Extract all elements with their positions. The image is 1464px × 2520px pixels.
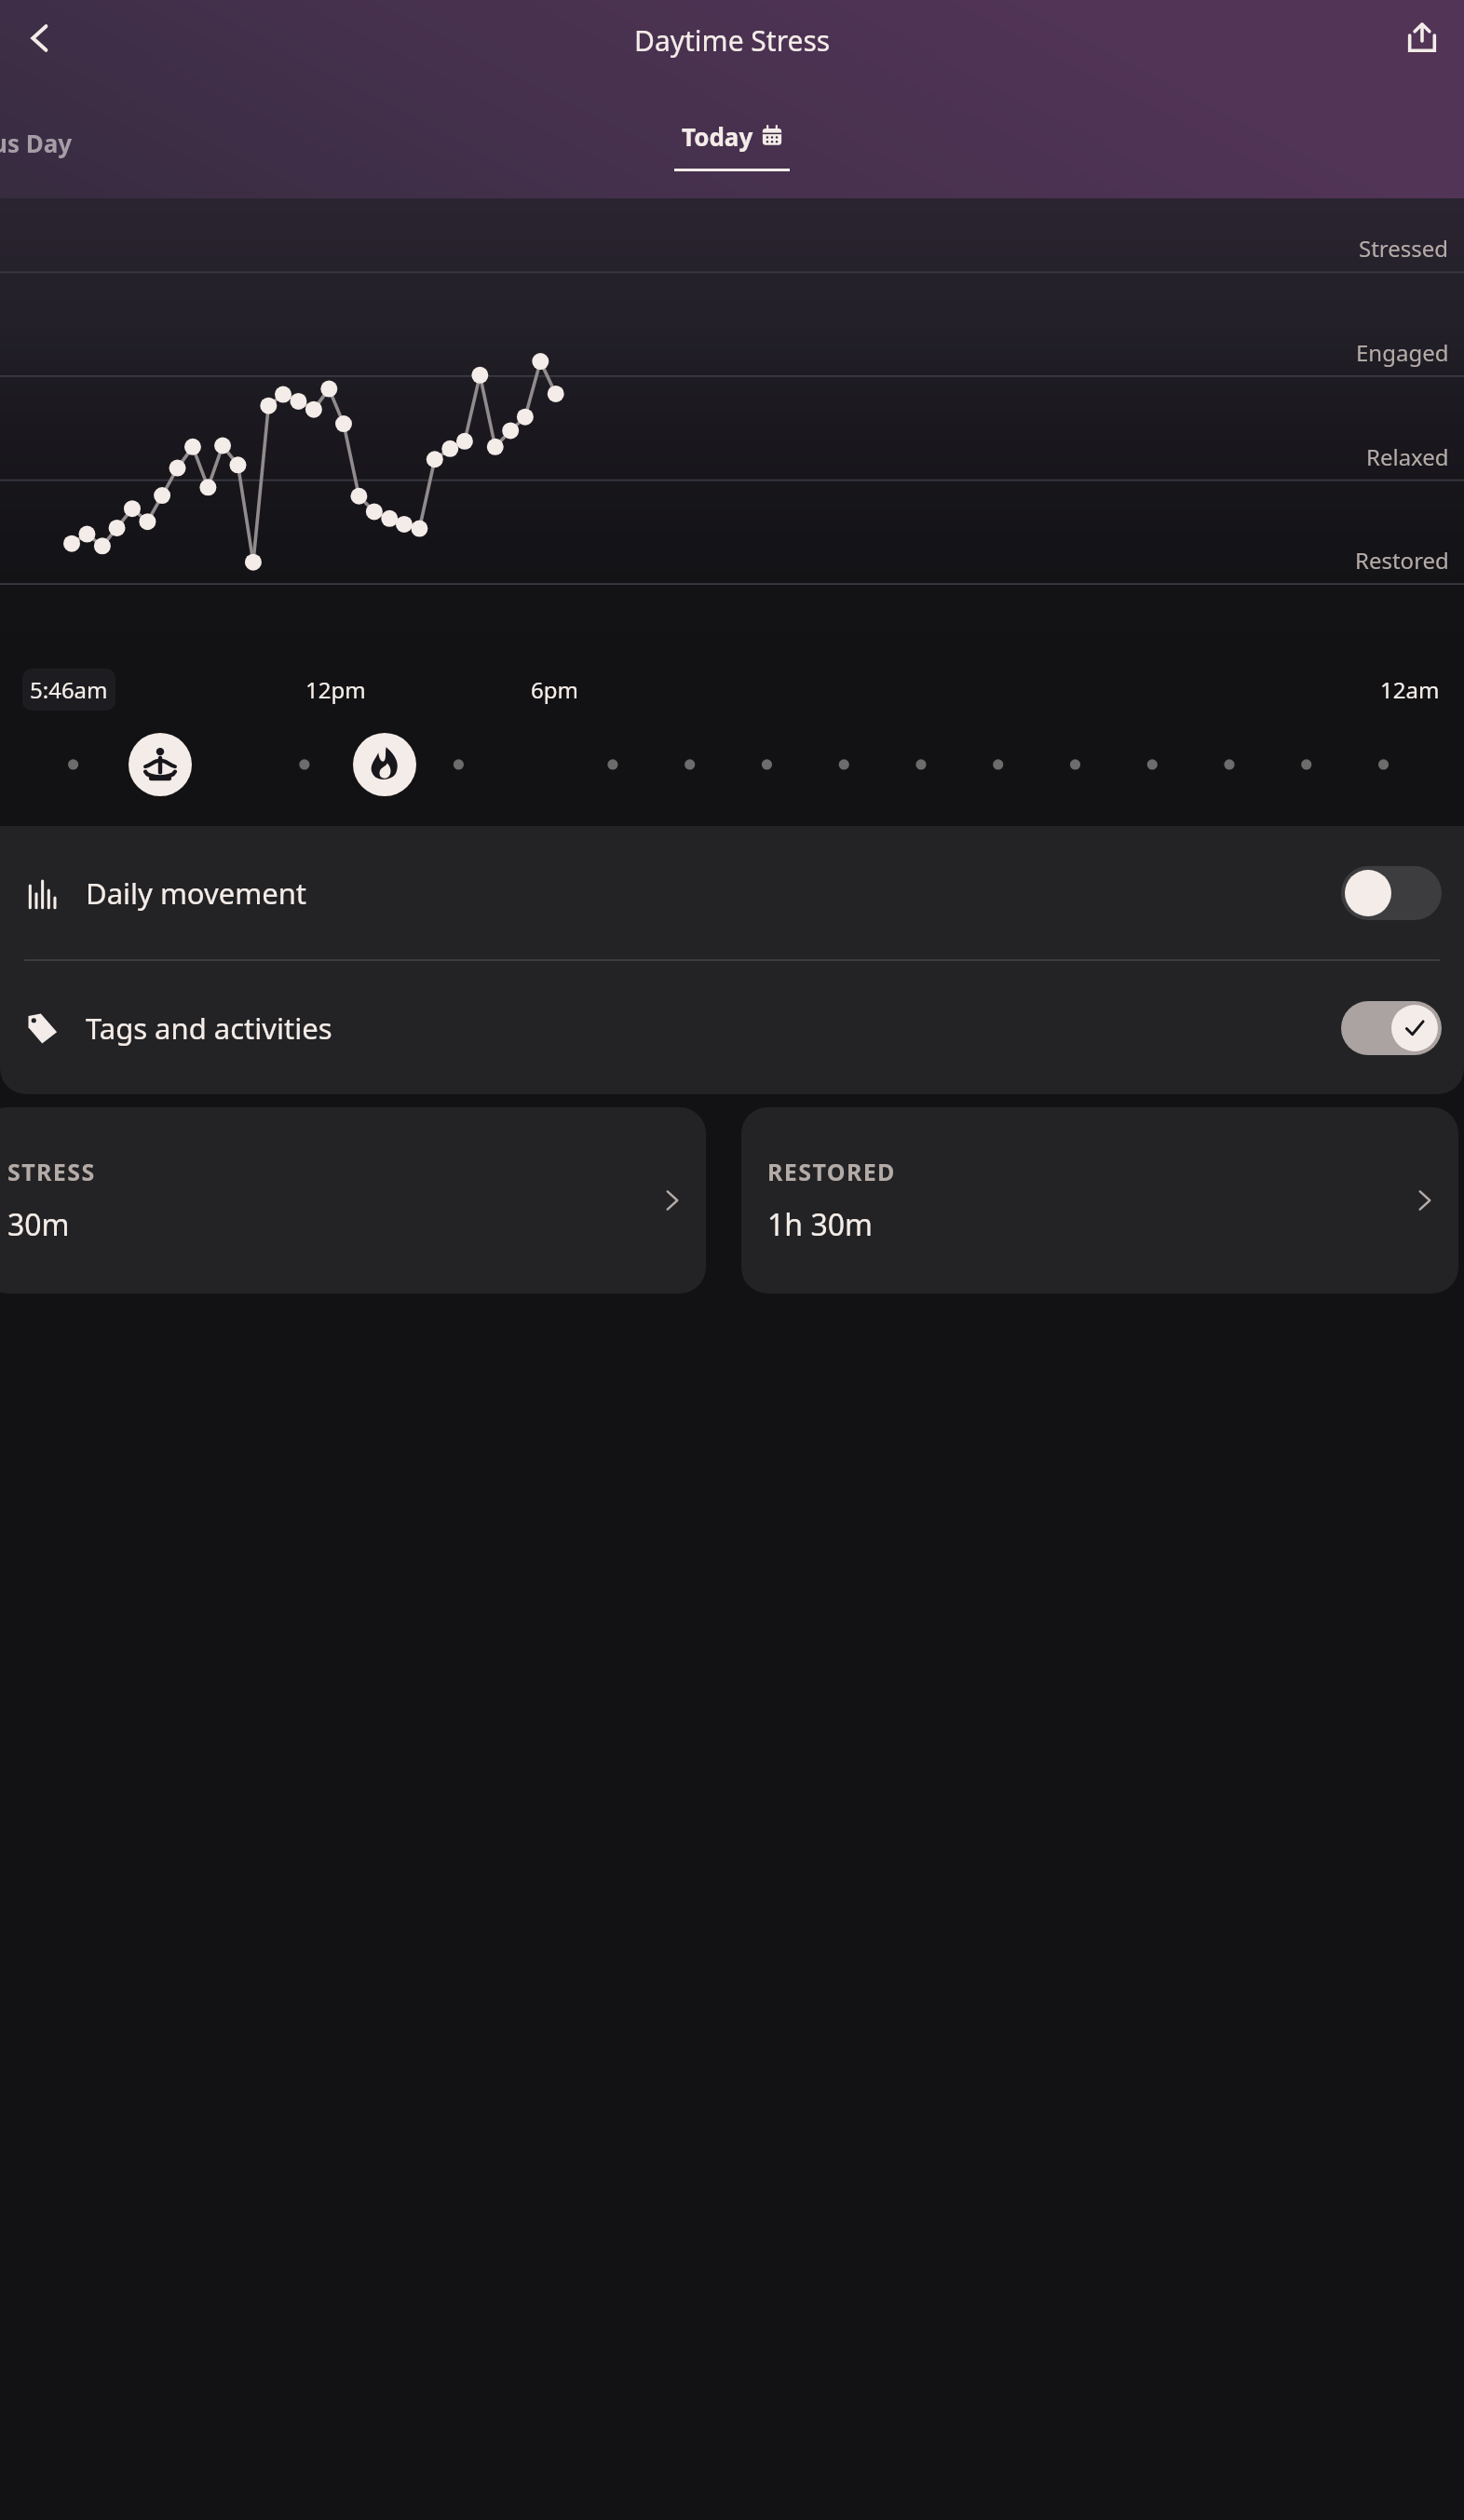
button[interactable]: Workout activity: [353, 733, 416, 796]
button[interactable]: Back: [13, 11, 67, 65]
staticText: 6pm: [531, 674, 578, 705]
button[interactable]: Share: [1395, 11, 1449, 65]
staticText: us Day: [0, 127, 73, 159]
button[interactable]: Daily movement: [0, 826, 1464, 959]
button[interactable]: STRESS: [0, 1107, 706, 1294]
button[interactable]: us Day: [0, 116, 168, 169]
staticText: 12am: [1380, 674, 1440, 705]
staticText: Tags and activities: [86, 1009, 332, 1048]
staticText: 5:46am: [30, 674, 108, 705]
staticText: Engaged: [1356, 337, 1449, 368]
staticText: 30m: [7, 1204, 70, 1245]
button[interactable]: RESTORED: [741, 1107, 1458, 1294]
staticText: Relaxed: [1366, 441, 1449, 472]
staticText: RESTORED: [767, 1156, 896, 1187]
button[interactable]: Disabled: [1341, 866, 1442, 920]
staticText: Stressed: [1359, 233, 1449, 264]
button[interactable]: Today: [674, 116, 790, 171]
button[interactable]: Meditation activity: [129, 733, 192, 796]
staticText: Today: [682, 120, 753, 153]
button[interactable]: Tags and activities: [0, 961, 1464, 1094]
staticText: STRESS: [7, 1156, 96, 1187]
staticText: 12pm: [305, 674, 366, 705]
staticText: Restored: [1355, 545, 1449, 576]
staticText: Daily movement: [86, 874, 307, 913]
staticText: 1h 30m: [767, 1204, 873, 1245]
staticText: Daytime Stress: [634, 21, 831, 60]
button[interactable]: Enabled: [1341, 1001, 1442, 1055]
